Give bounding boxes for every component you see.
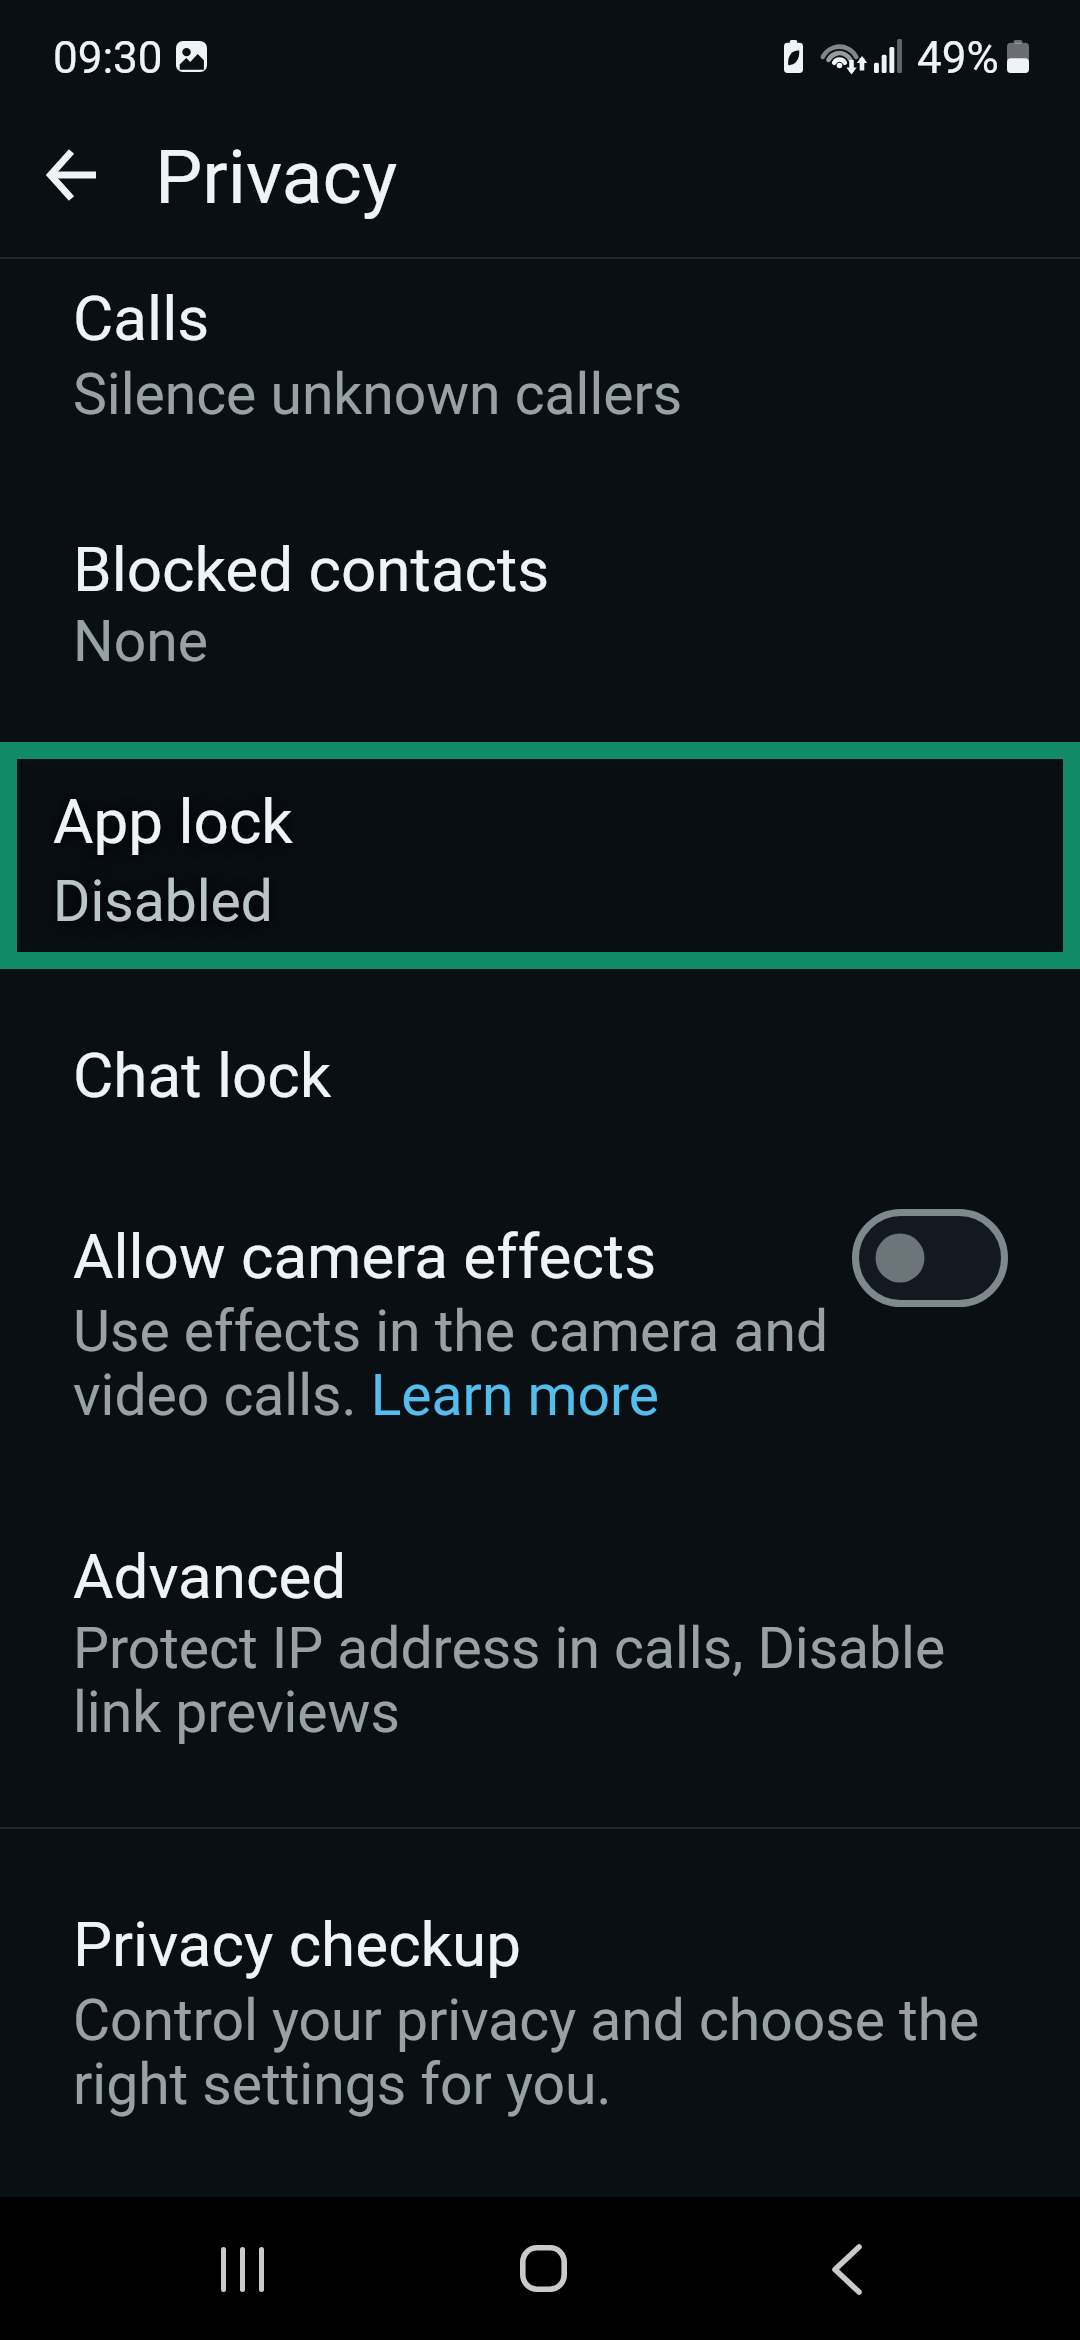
staticText: Protect IP address in calls, Disable lin… <box>73 1615 946 1746</box>
staticText: Calls <box>73 282 210 355</box>
staticText: Advanced <box>73 1540 347 1613</box>
button[interactable]: Allow camera effects <box>0 1121 1080 1451</box>
staticText: Blocked contacts <box>73 533 550 606</box>
staticText: Chat lock <box>73 1039 332 1112</box>
button[interactable]: App lock <box>0 742 1080 969</box>
staticText: Control your privacy and choose the righ… <box>73 1987 980 2118</box>
button[interactable]: Privacy checkup <box>0 1829 1080 2197</box>
staticText: 49% <box>917 32 999 84</box>
staticText: Privacy <box>155 133 398 221</box>
button[interactable]: Back <box>24 127 120 223</box>
staticText: None <box>73 608 208 675</box>
button[interactable]: Chat lock <box>0 969 1080 1121</box>
button[interactable]: Blocked contacts <box>0 490 1080 742</box>
staticText: Privacy checkup <box>73 1908 522 1981</box>
button[interactable]: Calls <box>0 266 1080 490</box>
staticText: 09:30 <box>53 32 163 84</box>
staticText: Silence unknown callers <box>73 361 683 428</box>
button[interactable]: Recent apps <box>152 2197 332 2340</box>
staticText: Disabled <box>53 868 273 935</box>
staticText: Use effects in the camera and video call… <box>73 1298 829 1429</box>
staticText: App lock <box>53 785 293 858</box>
button[interactable]: Home <box>450 2197 630 2340</box>
staticText: Allow camera effects <box>73 1220 657 1293</box>
button[interactable]: Back <box>760 2197 940 2340</box>
button[interactable]: Advanced <box>0 1451 1080 1827</box>
button[interactable]: Allow camera effects toggle, off <box>852 1209 1008 1307</box>
